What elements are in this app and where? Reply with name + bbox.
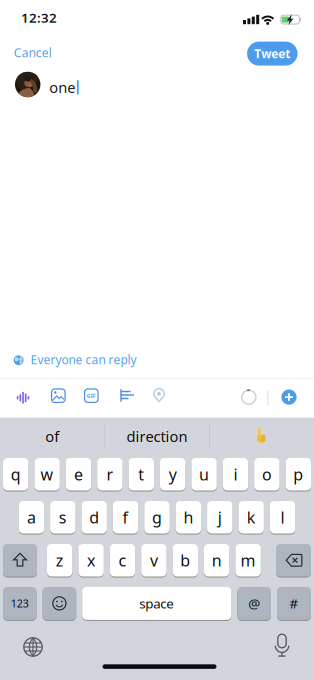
button[interactable]: @ bbox=[237, 586, 271, 620]
staticText: v bbox=[150, 550, 158, 571]
staticText: GIF bbox=[87, 392, 96, 399]
staticText: w bbox=[41, 464, 54, 485]
button[interactable]: GIF bbox=[80, 385, 102, 407]
button[interactable]: m bbox=[235, 543, 261, 577]
button[interactable]: of bbox=[2, 421, 102, 451]
button[interactable]: y bbox=[160, 457, 185, 491]
button[interactable]: Emoji suggestion bbox=[247, 421, 277, 451]
button[interactable]: Tweet bbox=[247, 42, 298, 66]
button[interactable]: d bbox=[81, 500, 107, 534]
button[interactable]: w bbox=[34, 457, 60, 491]
button[interactable]: v bbox=[141, 543, 167, 577]
button[interactable]: Add bbox=[281, 389, 297, 405]
staticText: i bbox=[233, 464, 237, 485]
button[interactable]: u bbox=[191, 457, 217, 491]
button[interactable]: direction bbox=[107, 421, 207, 451]
staticText: Cancel bbox=[14, 45, 52, 60]
staticText: of bbox=[45, 426, 59, 446]
staticText: m bbox=[241, 550, 256, 571]
staticText: g bbox=[152, 507, 162, 528]
button[interactable]: Poll bbox=[116, 385, 138, 407]
button[interactable]: a bbox=[19, 500, 44, 534]
staticText: 123 bbox=[11, 596, 29, 610]
staticText: n bbox=[212, 550, 222, 571]
button[interactable]: i bbox=[223, 457, 248, 491]
button[interactable]: b bbox=[173, 543, 198, 577]
staticText: y bbox=[169, 464, 177, 485]
button[interactable]: o bbox=[254, 457, 280, 491]
button[interactable]: space bbox=[82, 586, 231, 620]
staticText: t bbox=[138, 464, 144, 485]
button[interactable]: Everyone can reply bbox=[0, 0, 314, 680]
staticText: e bbox=[74, 464, 83, 485]
staticText: f bbox=[123, 507, 129, 528]
button[interactable]: f bbox=[113, 500, 138, 534]
staticText: space bbox=[139, 594, 174, 612]
staticText: @ bbox=[248, 594, 260, 612]
button[interactable]: Shift bbox=[3, 543, 37, 577]
staticText: Tweet bbox=[254, 46, 290, 61]
button[interactable]: e bbox=[66, 457, 91, 491]
staticText: c bbox=[118, 550, 126, 571]
button[interactable]: # bbox=[277, 586, 311, 620]
staticText: h bbox=[183, 507, 193, 528]
staticText: s bbox=[59, 507, 67, 528]
button[interactable]: s bbox=[50, 500, 75, 534]
button[interactable]: j bbox=[207, 500, 232, 534]
staticText: r bbox=[106, 464, 113, 485]
button[interactable]: l bbox=[270, 500, 295, 534]
staticText: 12:32 bbox=[21, 9, 57, 26]
button[interactable]: n bbox=[204, 543, 229, 577]
button[interactable]: 123 bbox=[3, 586, 37, 620]
button[interactable]: t bbox=[129, 457, 154, 491]
button[interactable]: g bbox=[144, 500, 170, 534]
button[interactable]: Dictate bbox=[269, 633, 295, 659]
staticText: p bbox=[293, 464, 303, 485]
staticText: one bbox=[49, 78, 75, 97]
staticText: d bbox=[89, 507, 99, 528]
button[interactable]: c bbox=[110, 543, 135, 577]
staticText: Everyone can reply bbox=[31, 352, 137, 368]
staticText: # bbox=[289, 594, 298, 612]
button[interactable]: Location bbox=[148, 384, 170, 406]
staticText: u bbox=[199, 464, 209, 485]
staticText: z bbox=[56, 550, 64, 571]
button[interactable]: Next keyboard bbox=[20, 634, 46, 660]
staticText: o bbox=[262, 464, 272, 485]
button[interactable]: h bbox=[176, 500, 201, 534]
staticText: b bbox=[180, 550, 190, 571]
button[interactable]: Voice bbox=[12, 386, 34, 408]
staticText: q bbox=[11, 464, 21, 485]
button[interactable]: Emoji bbox=[43, 586, 76, 620]
button[interactable]: Cancel bbox=[14, 45, 114, 60]
button[interactable]: x bbox=[78, 543, 104, 577]
button[interactable]: k bbox=[238, 500, 264, 534]
button[interactable]: Photos bbox=[47, 385, 69, 407]
staticText: x bbox=[87, 550, 95, 571]
button[interactable]: q bbox=[3, 457, 28, 491]
staticText: direction bbox=[126, 426, 187, 446]
button[interactable]: r bbox=[97, 457, 123, 491]
button[interactable]: p bbox=[286, 457, 311, 491]
staticText: a bbox=[27, 507, 36, 528]
staticText: l bbox=[281, 507, 285, 528]
staticText: j bbox=[218, 507, 222, 528]
button[interactable]: Delete bbox=[276, 543, 311, 577]
staticText: k bbox=[247, 507, 256, 528]
button[interactable]: z bbox=[47, 543, 72, 577]
